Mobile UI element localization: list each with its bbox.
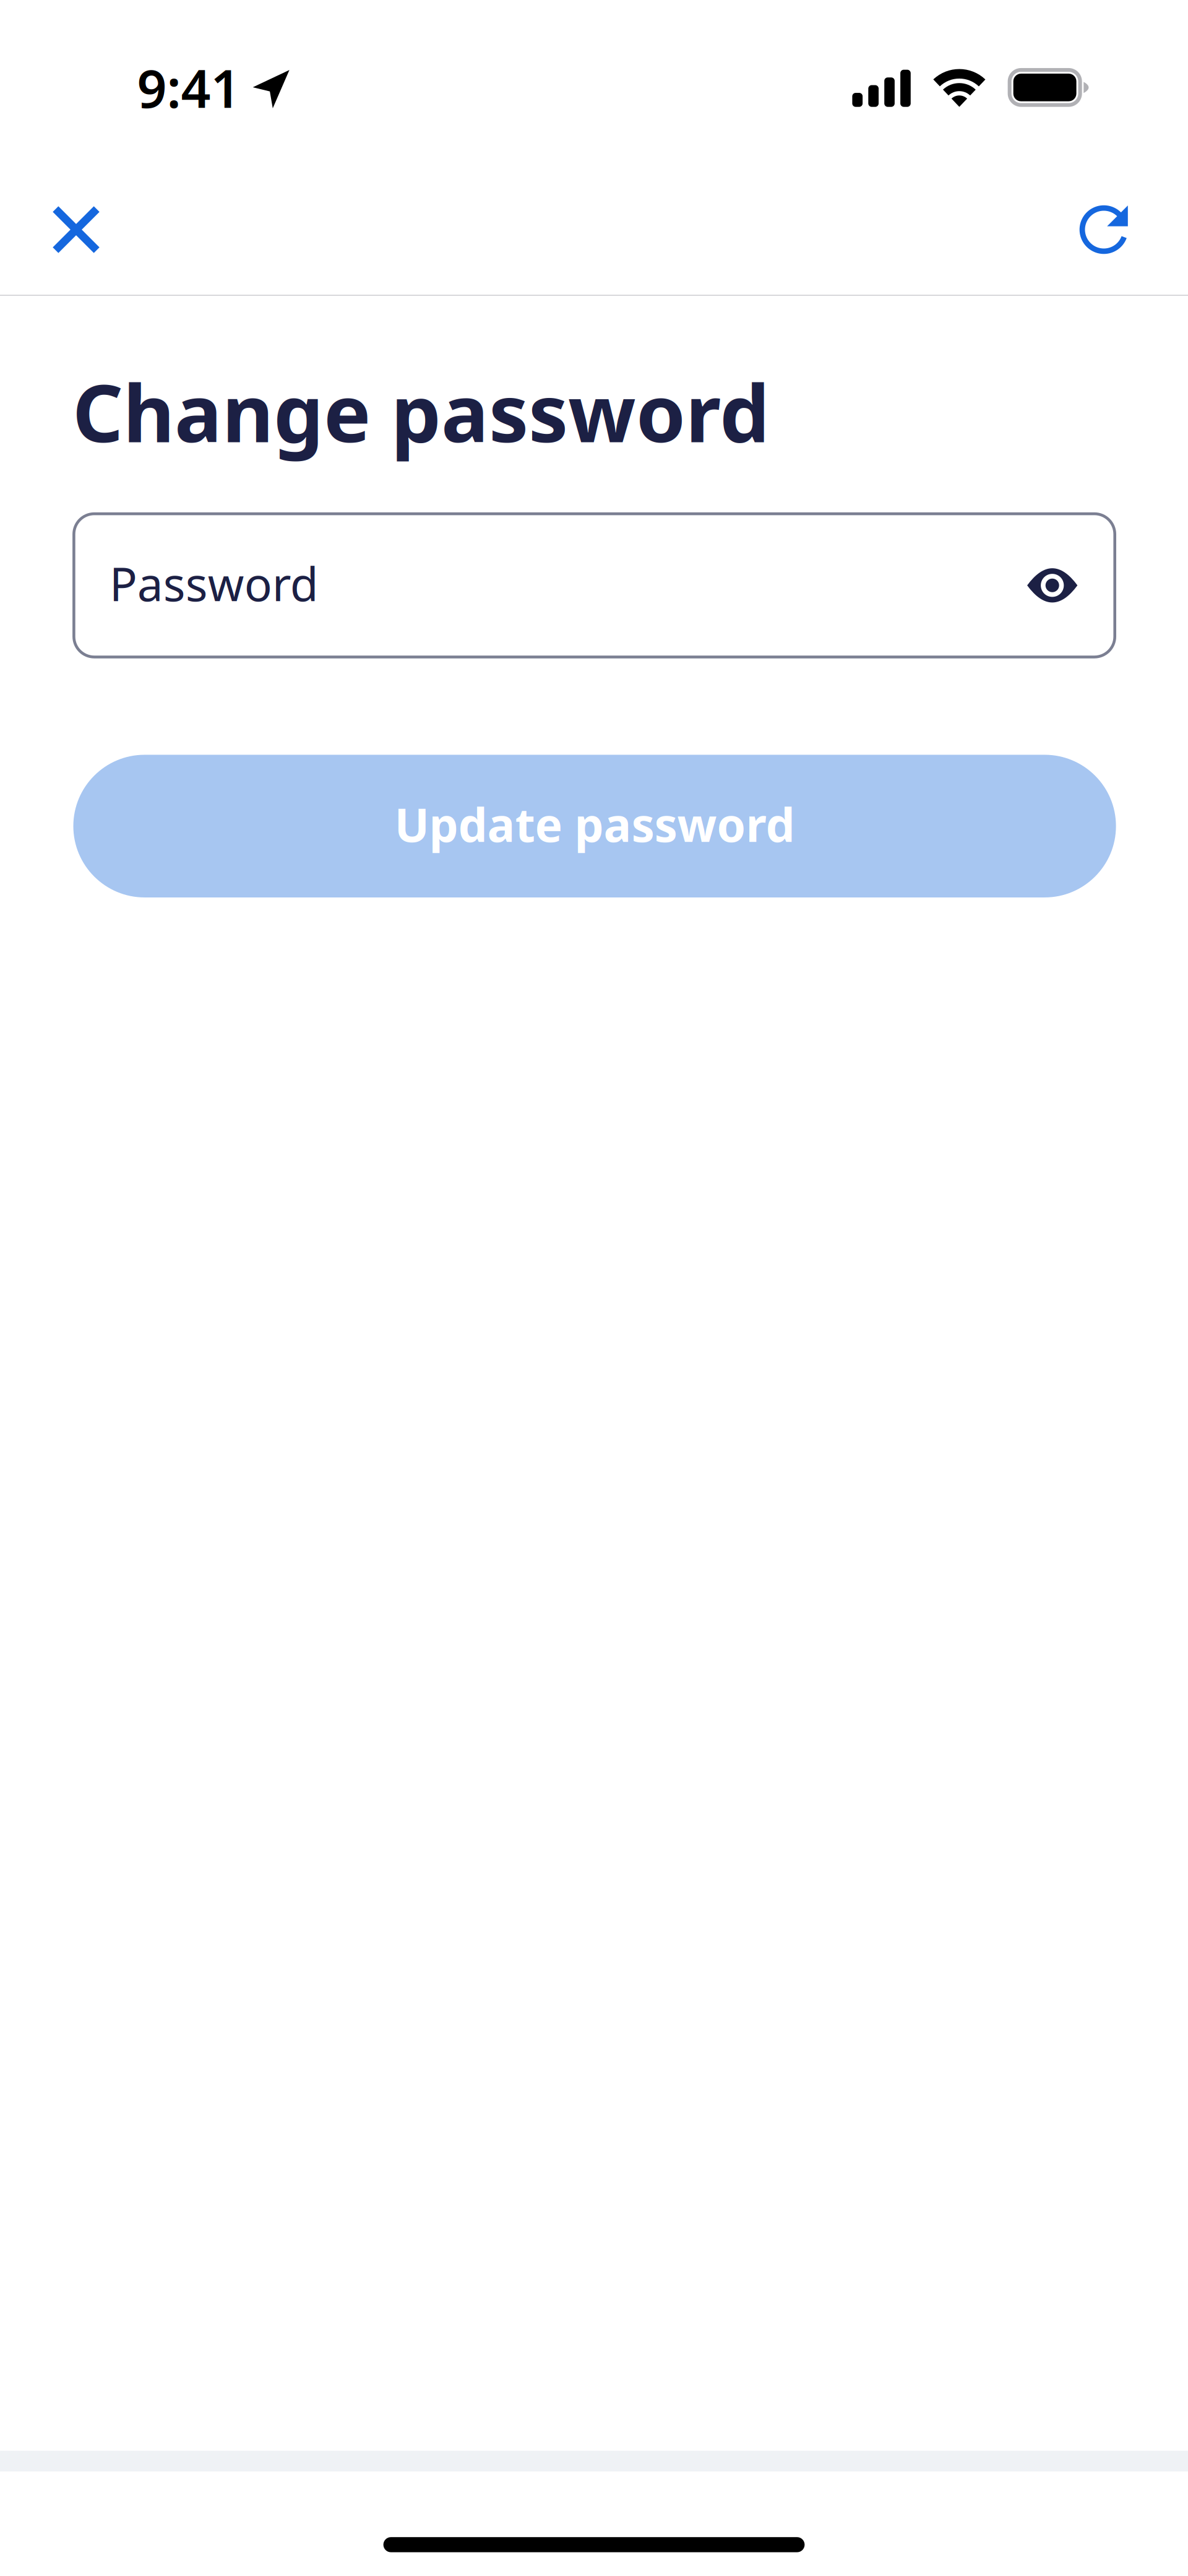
button[interactable]: Show password — [1009, 542, 1096, 629]
staticText: Password — [109, 553, 318, 614]
button[interactable]: Refresh — [1054, 163, 1153, 296]
staticText: 9:41 — [137, 53, 240, 122]
button[interactable]: Update password — [73, 755, 1116, 897]
button[interactable]: Close — [27, 163, 126, 296]
staticText: Change password — [72, 359, 770, 464]
staticText: Update password — [394, 793, 795, 855]
